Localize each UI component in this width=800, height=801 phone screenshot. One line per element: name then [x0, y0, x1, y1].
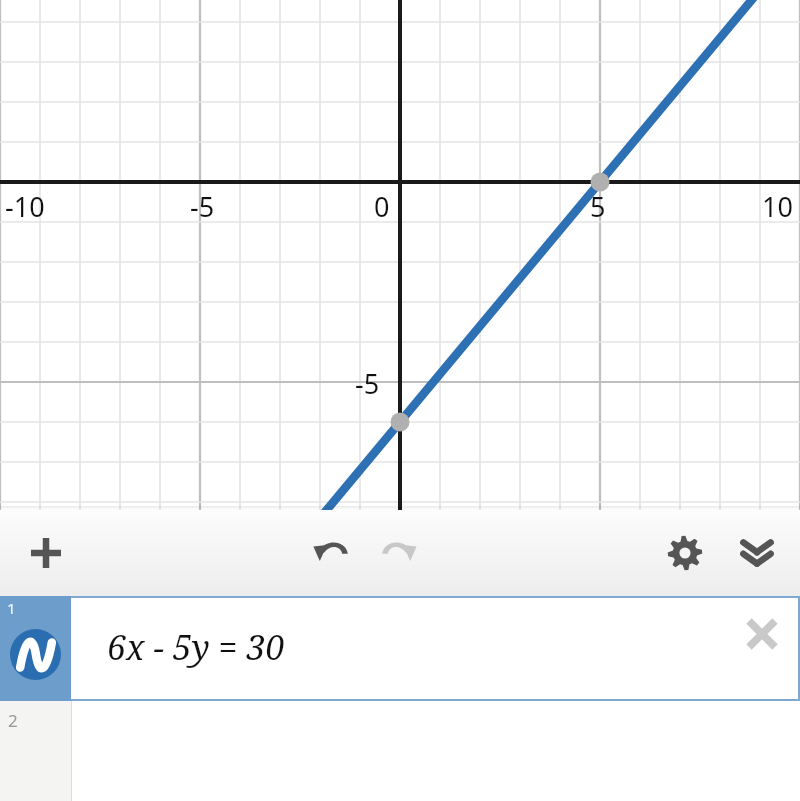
- button[interactable]: 1: [0, 596, 800, 701]
- button[interactable]: Collapse: [725, 531, 789, 575]
- button[interactable]: 2: [0, 701, 800, 801]
- button[interactable]: Redo: [366, 531, 432, 575]
- staticText: -5: [355, 365, 380, 402]
- button[interactable]: Delete expression: [740, 612, 784, 656]
- button[interactable]: Hide graph: [10, 629, 61, 680]
- staticText: 2: [8, 709, 18, 732]
- staticText: 6x − 5y = 30: [107, 624, 285, 670]
- staticText: 1: [7, 598, 16, 618]
- staticText: -10: [5, 188, 45, 225]
- button[interactable]: Undo: [298, 531, 364, 575]
- staticText: 0: [374, 188, 390, 225]
- button[interactable]: Settings: [653, 531, 717, 575]
- staticText: 5: [590, 188, 606, 225]
- staticText: -5: [190, 188, 215, 225]
- button[interactable]: Add expression: [10, 531, 82, 575]
- staticText: 10: [762, 188, 793, 225]
